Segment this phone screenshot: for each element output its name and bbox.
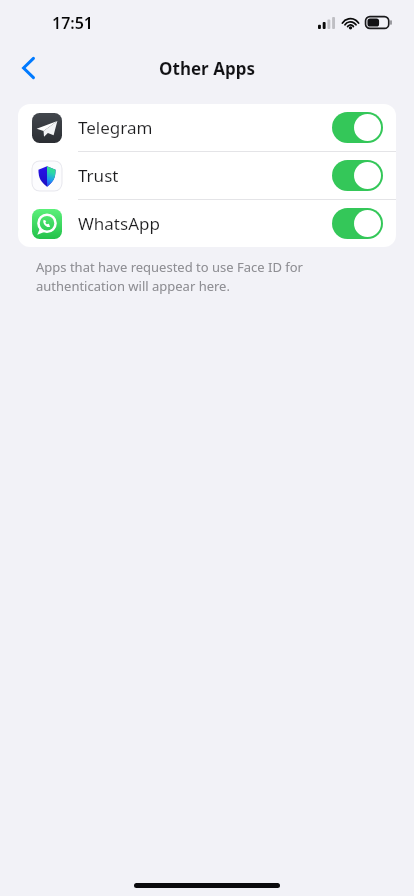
staticText: WhatsApp bbox=[78, 212, 160, 235]
button[interactable]: On bbox=[332, 160, 383, 191]
button[interactable]: WhatsApp bbox=[18, 200, 396, 247]
staticText: Other Apps bbox=[159, 57, 255, 80]
staticText: Apps that have requested to use Face ID … bbox=[36, 258, 303, 295]
button[interactable]: On bbox=[332, 112, 383, 143]
button[interactable]: On bbox=[332, 208, 383, 239]
staticText: Telegram bbox=[78, 116, 153, 139]
button[interactable]: Telegram bbox=[18, 104, 396, 151]
staticText: Trust bbox=[78, 164, 119, 187]
button[interactable]: Trust bbox=[18, 152, 396, 199]
staticText: 17:51 bbox=[52, 12, 94, 34]
button[interactable]: Back bbox=[6, 46, 50, 90]
